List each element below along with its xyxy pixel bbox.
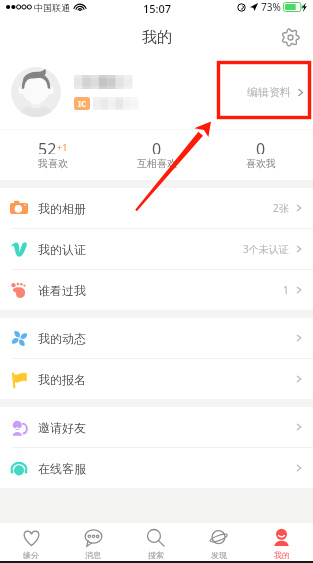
button[interactable]: 编辑资料: [243, 77, 309, 107]
staticText: 我的认证: [38, 242, 86, 257]
staticText: IC: [78, 98, 87, 109]
button[interactable]: 我的相册: [0, 188, 313, 228]
staticText: 我的: [142, 28, 172, 47]
staticText: 我的相册: [38, 201, 86, 216]
staticText: 我的: [274, 550, 290, 560]
button[interactable]: 邀请好友: [0, 407, 313, 447]
staticText: 谁看过我: [38, 283, 86, 298]
staticText: 搜索: [148, 550, 164, 560]
staticText: 中国联通: [34, 2, 70, 13]
staticText: 消息: [85, 550, 101, 560]
button[interactable]: 52: [0, 130, 105, 180]
staticText: 我的报名: [38, 372, 86, 387]
staticText: 我喜欢: [38, 157, 68, 170]
button[interactable]: 我的动态: [0, 318, 313, 358]
staticText: 我的动态: [38, 331, 86, 346]
button[interactable]: 0: [105, 130, 209, 180]
staticText: 1: [283, 283, 289, 297]
staticText: 互相喜欢: [137, 157, 177, 170]
button[interactable]: 我的: [250, 523, 313, 561]
staticText: 喜欢我: [246, 157, 276, 170]
staticText: 15:07: [143, 1, 172, 16]
staticText: 发现: [211, 550, 227, 560]
staticText: 52: [38, 138, 57, 154]
staticText: 0: [256, 138, 266, 154]
button[interactable]: 缘分: [0, 523, 62, 561]
button[interactable]: 0: [209, 130, 313, 180]
button[interactable]: 谁看过我: [0, 270, 313, 310]
button[interactable]: 搜索: [124, 523, 187, 561]
staticText: +1: [57, 141, 68, 153]
staticText: 73%: [261, 0, 281, 14]
button[interactable]: 在线客服: [0, 448, 313, 488]
staticText: 3个未认证: [243, 242, 289, 256]
staticText: 0: [152, 138, 162, 154]
staticText: 缘分: [23, 550, 39, 560]
staticText: 邀请好友: [38, 420, 86, 435]
staticText: 在线客服: [38, 461, 86, 476]
button[interactable]: Settings: [277, 24, 303, 50]
button[interactable]: 我的认证: [0, 229, 313, 269]
staticText: 2张: [273, 201, 289, 215]
button[interactable]: 发现: [187, 523, 250, 561]
staticText: 编辑资料: [247, 85, 291, 99]
button[interactable]: 消息: [62, 523, 124, 561]
button[interactable]: 我的报名: [0, 359, 313, 399]
